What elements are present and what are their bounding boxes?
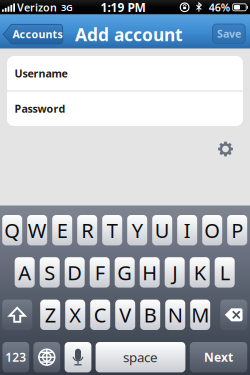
button[interactable]: Q [2, 215, 22, 245]
staticText: N [168, 301, 183, 328]
staticText: D [67, 259, 82, 286]
staticText: Verizon [17, 0, 57, 14]
button[interactable] [220, 300, 247, 330]
staticText: Accounts [12, 27, 62, 41]
button[interactable]: 123 [2, 342, 29, 372]
button[interactable]: P [227, 215, 247, 245]
staticText: 46% [209, 0, 230, 14]
button[interactable]: U [152, 215, 172, 245]
button[interactable]: space [96, 342, 185, 372]
staticText: C [94, 301, 107, 328]
staticText: M [191, 301, 209, 328]
button[interactable]: K [190, 257, 210, 288]
staticText: X [69, 301, 81, 328]
staticText: F [95, 259, 105, 286]
button[interactable]: H [140, 257, 160, 288]
button[interactable]: Z [40, 300, 60, 330]
staticText: space [123, 348, 158, 366]
staticText: A [18, 259, 31, 286]
button[interactable] [2, 300, 32, 330]
button[interactable]: A [15, 257, 35, 288]
button[interactable] [33, 342, 60, 372]
button[interactable]: I [177, 215, 197, 245]
staticText: H [142, 259, 157, 286]
staticText: K [194, 259, 206, 286]
button[interactable]: E [52, 215, 72, 245]
staticText: Y [132, 217, 143, 243]
button[interactable]: T [102, 215, 122, 245]
staticText: 3G [61, 1, 73, 13]
button[interactable]: G [115, 257, 135, 288]
button[interactable]: Accounts [3, 24, 63, 44]
staticText: Z [45, 301, 56, 328]
button[interactable]: Save [213, 24, 245, 43]
staticText: S [44, 259, 55, 286]
staticText: T [107, 217, 118, 243]
button[interactable]: X [65, 300, 85, 330]
staticText: Q [4, 217, 20, 243]
staticText: O [204, 217, 220, 243]
button[interactable]: W [27, 215, 47, 245]
staticText: R [81, 217, 93, 243]
button[interactable]: L [215, 257, 235, 288]
staticText: U [155, 217, 170, 243]
staticText: W [28, 217, 47, 243]
button[interactable]: F [90, 257, 110, 288]
button[interactable] [65, 342, 91, 372]
button[interactable]: R [77, 215, 97, 245]
button[interactable]: B [140, 300, 160, 330]
staticText: B [144, 301, 157, 328]
staticText: 1:19 PM [100, 0, 145, 15]
staticText: Add account [75, 23, 183, 46]
button[interactable]: M [190, 300, 210, 330]
staticText: Username [14, 66, 67, 80]
staticText: L [220, 259, 230, 286]
button[interactable]: C [90, 300, 110, 330]
staticText: Save [217, 27, 241, 41]
button[interactable]: J [165, 257, 185, 288]
button[interactable]: S [40, 257, 60, 288]
button[interactable]: O [202, 215, 222, 245]
button[interactable]: D [65, 257, 85, 288]
button[interactable]: Y [127, 215, 147, 245]
staticText: I [184, 217, 191, 243]
staticText: P [231, 217, 243, 243]
staticText: J [172, 259, 177, 286]
button[interactable]: V [115, 300, 135, 330]
staticText: G [117, 259, 132, 286]
button[interactable]: Settings [218, 141, 233, 156]
staticText: Next [204, 349, 233, 365]
staticText: E [57, 217, 68, 243]
staticText: 123 [5, 349, 26, 365]
button[interactable]: Next [190, 342, 247, 372]
button[interactable]: N [165, 300, 185, 330]
staticText: Password [14, 102, 65, 116]
staticText: V [119, 301, 131, 328]
